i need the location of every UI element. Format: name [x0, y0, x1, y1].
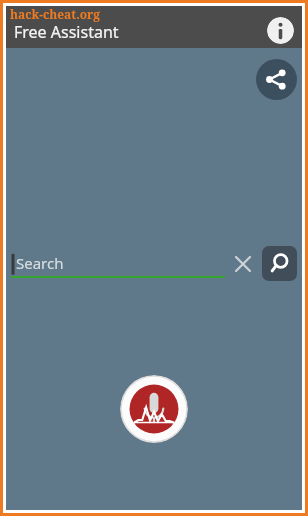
- button[interactable]: Record: [120, 375, 188, 443]
- staticText: hack-cheat.org: [10, 6, 101, 22]
- button[interactable]: Search: [262, 246, 297, 281]
- staticText: Search: [16, 253, 64, 273]
- button[interactable]: Info: [267, 17, 294, 44]
- staticText: Free Assistant: [14, 21, 119, 43]
- button[interactable]: Clear: [229, 250, 257, 278]
- button[interactable]: Share: [256, 59, 297, 100]
